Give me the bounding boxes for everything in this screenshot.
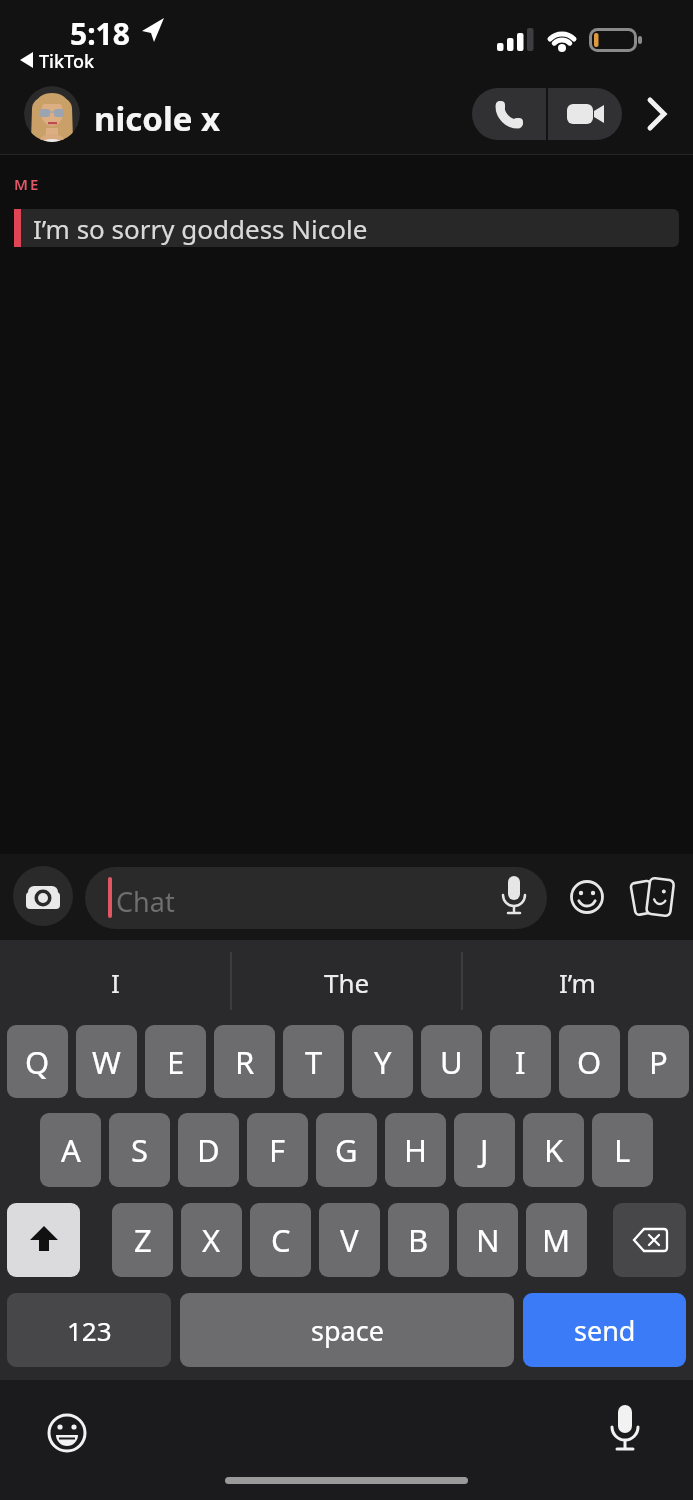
- button[interactable]: M: [526, 1203, 587, 1277]
- button[interactable]: X: [181, 1203, 242, 1277]
- button[interactable]: A: [40, 1113, 101, 1187]
- staticText: I: [111, 965, 120, 999]
- button[interactable]: H: [385, 1113, 446, 1187]
- button[interactable]: K: [523, 1113, 584, 1187]
- staticText: E: [167, 1041, 185, 1083]
- button[interactable]: V: [319, 1203, 380, 1277]
- button[interactable]: [500, 872, 528, 918]
- button[interactable]: G: [316, 1113, 377, 1187]
- button[interactable]: L: [592, 1113, 653, 1187]
- staticText: U: [440, 1041, 463, 1083]
- button[interactable]: T: [283, 1025, 344, 1098]
- button[interactable]: [24, 86, 80, 142]
- button[interactable]: I: [0, 965, 231, 999]
- button[interactable]: I’m: [462, 965, 693, 999]
- staticText: J: [480, 1129, 489, 1171]
- button[interactable]: [630, 874, 676, 920]
- staticText: I’m so sorry goddess Nicole: [33, 211, 368, 246]
- button[interactable]: E: [145, 1025, 206, 1098]
- staticText: A: [61, 1129, 81, 1171]
- staticText: K: [544, 1129, 564, 1171]
- button[interactable]: [564, 96, 608, 132]
- staticText: The: [324, 965, 370, 999]
- button[interactable]: P: [628, 1025, 689, 1098]
- button[interactable]: R: [214, 1025, 275, 1098]
- staticText: R: [235, 1041, 255, 1083]
- staticText: X: [202, 1219, 221, 1261]
- staticText: nicole x: [94, 96, 221, 134]
- button[interactable]: [608, 1402, 642, 1460]
- staticText: F: [269, 1129, 286, 1171]
- button[interactable]: Y: [352, 1025, 413, 1098]
- button[interactable]: The: [231, 965, 462, 999]
- staticText: H: [404, 1129, 427, 1171]
- staticText: V: [340, 1219, 359, 1261]
- button[interactable]: S: [109, 1113, 170, 1187]
- button[interactable]: [569, 879, 605, 915]
- staticText: C: [271, 1219, 291, 1261]
- staticText: B: [408, 1219, 429, 1261]
- button[interactable]: Z: [112, 1203, 173, 1277]
- staticText: T: [305, 1041, 323, 1083]
- staticText: Q: [25, 1041, 50, 1083]
- button[interactable]: 123: [7, 1293, 171, 1367]
- staticText: TikTok: [39, 49, 94, 71]
- button[interactable]: [613, 1203, 686, 1277]
- staticText: I’m: [559, 965, 596, 999]
- staticText: D: [197, 1129, 220, 1171]
- staticText: W: [92, 1041, 121, 1083]
- button[interactable]: N: [457, 1203, 518, 1277]
- button[interactable]: O: [559, 1025, 620, 1098]
- button[interactable]: C: [250, 1203, 311, 1277]
- staticText: ME: [14, 174, 41, 194]
- button[interactable]: [85, 867, 547, 929]
- button[interactable]: Q: [7, 1025, 68, 1098]
- staticText: Chat: [116, 883, 175, 915]
- button[interactable]: [644, 98, 672, 130]
- staticText: M: [542, 1219, 571, 1261]
- staticText: S: [131, 1129, 149, 1171]
- staticText: G: [335, 1129, 358, 1171]
- staticText: Y: [374, 1041, 392, 1083]
- button[interactable]: I: [490, 1025, 551, 1098]
- button[interactable]: I’m so sorry goddess Nicole: [21, 209, 679, 247]
- button[interactable]: U: [421, 1025, 482, 1098]
- button[interactable]: B: [388, 1203, 449, 1277]
- button[interactable]: [47, 1413, 87, 1453]
- staticText: L: [614, 1129, 631, 1171]
- button[interactable]: space: [180, 1293, 514, 1367]
- button[interactable]: F: [247, 1113, 308, 1187]
- button[interactable]: [492, 96, 528, 132]
- staticText: O: [577, 1041, 602, 1083]
- staticText: 123: [67, 1313, 112, 1348]
- button[interactable]: [13, 866, 73, 926]
- button[interactable]: J: [454, 1113, 515, 1187]
- staticText: I: [515, 1041, 526, 1083]
- button[interactable]: send: [523, 1293, 686, 1367]
- button[interactable]: D: [178, 1113, 239, 1187]
- staticText: P: [649, 1041, 668, 1083]
- button[interactable]: [7, 1203, 80, 1277]
- staticText: send: [574, 1312, 636, 1349]
- staticText: N: [476, 1219, 500, 1261]
- staticText: 5:18: [70, 13, 130, 47]
- button[interactable]: W: [76, 1025, 137, 1098]
- staticText: space: [311, 1312, 384, 1349]
- staticText: Z: [134, 1219, 152, 1261]
